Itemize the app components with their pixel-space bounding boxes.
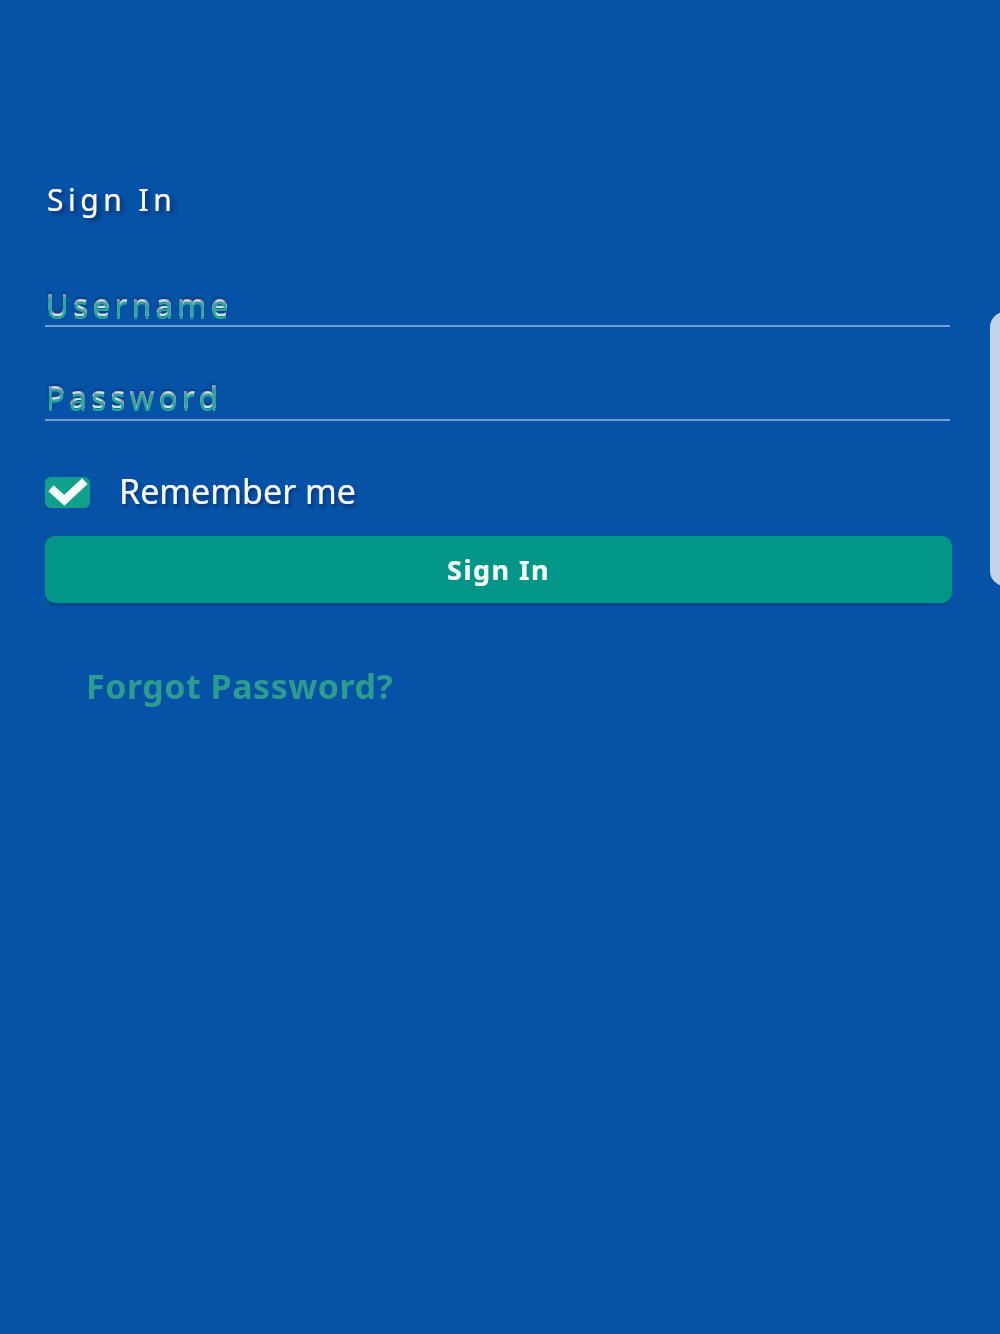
button[interactable] xyxy=(45,477,90,508)
staticText: Sign In xyxy=(447,551,551,588)
staticText: Sign In xyxy=(47,179,177,220)
staticText: Username xyxy=(46,286,233,328)
staticText: Password xyxy=(46,375,223,417)
staticText: Password xyxy=(46,378,223,420)
staticText: Remember me xyxy=(119,468,357,514)
button[interactable]: Sign In xyxy=(45,536,952,603)
staticText: Username xyxy=(46,283,233,325)
button[interactable]: Forgot Password? xyxy=(86,663,394,709)
